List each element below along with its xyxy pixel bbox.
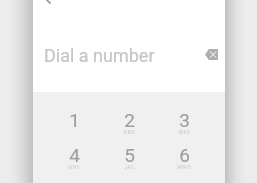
- button[interactable]: 4: [46, 144, 102, 179]
- staticText: 5: [124, 144, 135, 166]
- button[interactable]: 1: [46, 109, 102, 144]
- staticText: GHI: [68, 164, 80, 170]
- staticText: 1: [69, 109, 80, 131]
- staticText: 4: [69, 144, 80, 166]
- button[interactable]: 5: [102, 144, 157, 179]
- staticText: JKL: [124, 164, 136, 170]
- staticText: DEF: [179, 129, 191, 135]
- button[interactable]: 2: [102, 109, 157, 144]
- staticText: MNO: [177, 164, 192, 170]
- button[interactable]: Backspace: [197, 40, 225, 68]
- button[interactable]: 3: [157, 109, 212, 144]
- staticText: Dial a number: [44, 45, 155, 66]
- staticText: ABC: [123, 129, 136, 135]
- button[interactable]: Back: [32, 0, 58, 6]
- staticText: 3: [179, 109, 190, 131]
- button[interactable]: 6: [157, 144, 212, 179]
- staticText: 6: [179, 144, 190, 166]
- staticText: 2: [124, 109, 135, 131]
